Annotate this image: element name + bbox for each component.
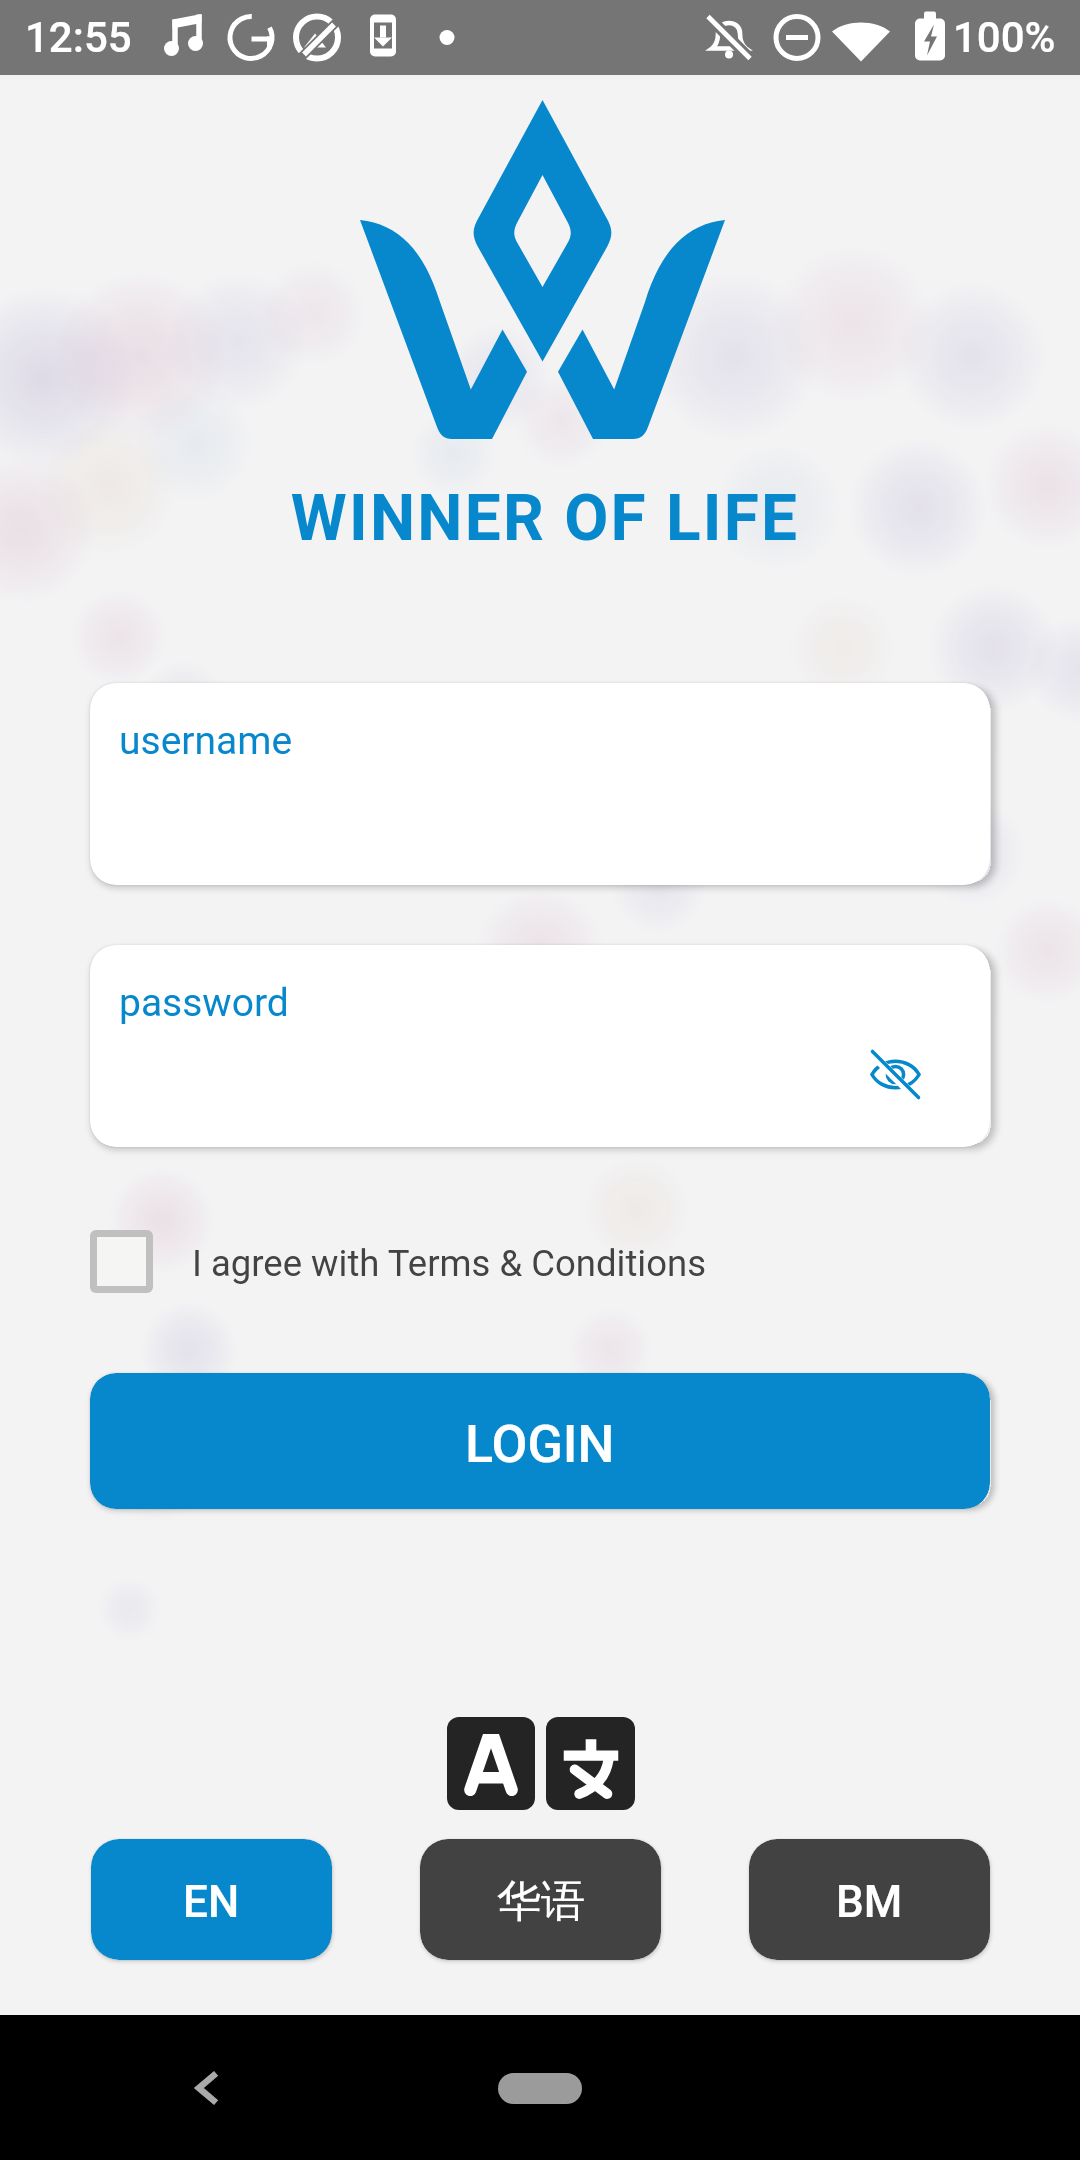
button[interactable]: password <box>90 945 990 1147</box>
staticText: I agree with Terms & Conditions <box>192 1242 707 1285</box>
staticText: 100% <box>953 13 1056 62</box>
button[interactable]: BM <box>749 1839 990 1960</box>
button[interactable]: 华语 <box>420 1839 661 1960</box>
staticText: password <box>119 980 289 1026</box>
other: Language <box>447 1717 634 1812</box>
staticText: EN <box>183 1876 240 1928</box>
button[interactable]: Home <box>498 2073 582 2104</box>
staticText: 华语 <box>497 1874 585 1929</box>
staticText: LOGIN <box>465 1414 615 1475</box>
staticText: 12:55 <box>25 13 132 62</box>
button[interactable]: LOGIN <box>90 1373 990 1509</box>
button[interactable]: username <box>90 683 990 885</box>
staticText: username <box>119 718 293 764</box>
button[interactable]: Back <box>170 2051 244 2125</box>
staticText: WINNER OF LIFE <box>5 481 1080 556</box>
button[interactable]: I agree with Terms & Conditions <box>70 1218 730 1306</box>
button[interactable]: Show password <box>850 1029 940 1119</box>
button[interactable]: EN <box>91 1839 332 1960</box>
staticText: BM <box>836 1876 903 1928</box>
